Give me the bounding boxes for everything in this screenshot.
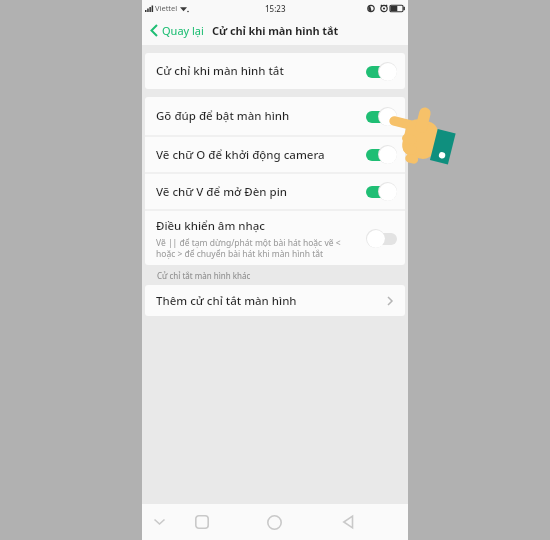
staticText: Cử chỉ tắt màn hình khác (157, 270, 251, 281)
staticText: Vẽ chữ O để khởi động camera (156, 147, 325, 163)
button[interactable] (151, 514, 167, 530)
staticText: Cử chỉ khi màn hình tắt (212, 23, 339, 38)
button[interactable]: Điều khiển âm nhạc (145, 211, 405, 265)
staticText: Thêm cử chỉ tắt màn hình (156, 293, 297, 309)
button[interactable]: Cử chỉ khi màn hình tắt (145, 53, 405, 89)
button[interactable] (366, 182, 397, 201)
staticText: 15:23 (265, 3, 286, 14)
button[interactable] (194, 514, 210, 530)
button[interactable]: Vẽ chữ V để mở Đèn pin (145, 174, 405, 209)
button[interactable] (266, 514, 282, 530)
staticText: Cử chỉ khi màn hình tắt (156, 63, 284, 79)
staticText: Điều khiển âm nhạc (156, 218, 265, 234)
staticText: Quay lại (162, 23, 204, 38)
button[interactable] (366, 62, 397, 81)
button[interactable] (340, 514, 356, 530)
button[interactable] (366, 229, 397, 248)
staticText: Vẽ || để tạm dừng/phát một bài hát hoặc … (156, 237, 341, 259)
button[interactable]: Quay lại (150, 23, 204, 38)
button[interactable] (366, 145, 397, 164)
staticText: Gõ đúp để bật màn hình (156, 108, 290, 124)
staticText: Viettel (155, 3, 178, 13)
staticText: Vẽ chữ V để mở Đèn pin (156, 184, 287, 200)
button[interactable] (366, 107, 397, 126)
button[interactable]: Thêm cử chỉ tắt màn hình (145, 285, 405, 316)
button[interactable]: Gõ đúp để bật màn hình (145, 97, 405, 135)
button[interactable]: Vẽ chữ O để khởi động camera (145, 137, 405, 172)
